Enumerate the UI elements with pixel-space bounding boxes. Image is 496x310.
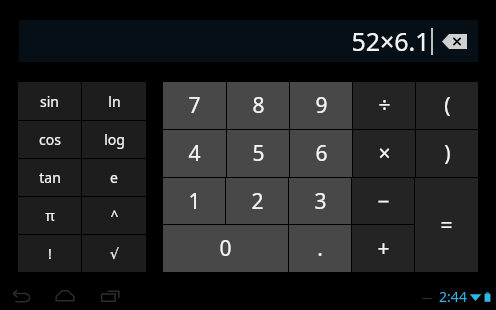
staticText: 5 (252, 139, 265, 168)
staticText: 6 (315, 139, 328, 168)
staticText: 7 (188, 91, 201, 120)
staticText: × (378, 139, 391, 168)
button[interactable]: Back (7, 284, 33, 308)
staticText: ) (444, 139, 451, 168)
staticText: ln (108, 92, 121, 111)
button[interactable]: . (289, 225, 351, 272)
button[interactable]: 0 (163, 225, 288, 272)
staticText: 3 (314, 187, 327, 216)
button[interactable]: ÷ (353, 82, 415, 129)
button[interactable]: 4 (163, 130, 226, 177)
button[interactable]: Backspace (442, 34, 467, 49)
button[interactable]: × (353, 130, 415, 177)
staticText: π (45, 206, 55, 225)
staticText: ( (444, 91, 451, 120)
staticText: 1 (188, 187, 201, 216)
button[interactable]: tan (18, 159, 81, 196)
staticText: — (422, 290, 432, 304)
staticText: . (317, 234, 323, 263)
button[interactable]: 2 (226, 178, 288, 224)
staticText: 8 (252, 91, 265, 120)
button[interactable]: cos (18, 121, 81, 158)
button[interactable]: e (82, 159, 146, 196)
button[interactable]: Home (52, 284, 78, 308)
button[interactable]: π (18, 197, 81, 234)
button[interactable]: ) (416, 130, 478, 177)
staticText: 2:44 (439, 287, 467, 306)
staticText: + (377, 234, 390, 263)
button[interactable]: ! (18, 235, 81, 272)
button[interactable]: 9 (290, 82, 352, 129)
button[interactable]: Recent apps (97, 284, 123, 308)
staticText: ^ (110, 206, 119, 225)
button[interactable]: 7 (163, 82, 226, 129)
staticText: tan (39, 168, 61, 187)
button[interactable]: 8 (227, 82, 289, 129)
staticText: 0 (219, 234, 232, 263)
button[interactable]: √ (82, 235, 146, 272)
staticText: √ (110, 246, 119, 262)
staticText: = (440, 211, 453, 240)
staticText: 52×6.1 (351, 24, 430, 58)
staticText: log (104, 130, 125, 149)
button[interactable]: ^ (82, 197, 146, 234)
staticText: 2 (251, 187, 264, 216)
button[interactable]: + (352, 225, 414, 272)
button[interactable]: 1 (163, 178, 225, 224)
button[interactable]: sin (18, 82, 81, 120)
button[interactable]: − (352, 178, 414, 224)
button[interactable]: 3 (289, 178, 351, 224)
button[interactable]: = (415, 178, 478, 272)
staticText: 9 (315, 91, 328, 120)
button[interactable]: 6 (290, 130, 352, 177)
button[interactable]: 5 (227, 130, 289, 177)
button[interactable]: ( (416, 82, 478, 129)
button[interactable]: log (82, 121, 146, 158)
staticText: ÷ (378, 91, 391, 120)
staticText: 4 (188, 139, 201, 168)
staticText: cos (39, 130, 61, 149)
staticText: sin (40, 92, 59, 111)
staticText: e (110, 168, 118, 187)
staticText: ! (48, 244, 52, 263)
staticText: − (377, 187, 390, 216)
button[interactable]: ln (82, 82, 146, 120)
